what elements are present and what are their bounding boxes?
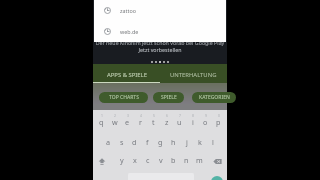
staticText: o (203, 117, 208, 127)
button[interactable]: j (180, 133, 193, 149)
button[interactable]: 5 (147, 113, 160, 129)
staticText: 3 (127, 113, 129, 118)
button[interactable]: SPIELE (153, 92, 184, 103)
button[interactable]: Shift (96, 155, 108, 167)
staticText: y (120, 155, 124, 165)
staticText: h (171, 137, 176, 147)
button[interactable]: n (180, 151, 193, 167)
staticText: e (125, 117, 130, 127)
staticText: b (171, 155, 176, 165)
staticText: t (152, 117, 155, 127)
staticText: q (99, 117, 104, 127)
button[interactable]: 7 (173, 113, 186, 129)
other: Recent search (104, 28, 111, 35)
button[interactable]: Der neue Kinofilm jetzt schon vorab bei … (93, 0, 227, 64)
staticText: 5 (153, 113, 155, 118)
staticText: k (198, 137, 202, 147)
staticText: r (139, 117, 142, 127)
button[interactable]: s (115, 133, 128, 149)
button[interactable]: UNTERHALTUNG (160, 64, 227, 83)
button[interactable]: a (102, 133, 115, 149)
staticText: web.de (120, 28, 139, 35)
staticText: zattoo (120, 7, 136, 14)
staticText: 0 (218, 113, 220, 118)
button[interactable]: 4 (134, 113, 147, 129)
staticText: APPS & SPIELE (107, 71, 147, 79)
staticText: f (146, 137, 149, 147)
staticText: SPIELE (161, 94, 177, 101)
staticText: s (120, 137, 124, 147)
button[interactable]: h (167, 133, 180, 149)
staticText: x (133, 155, 137, 165)
staticText: 7 (179, 113, 181, 118)
button[interactable]: 1 (95, 113, 108, 129)
button[interactable]: c (141, 151, 154, 167)
button[interactable]: Recent search (94, 21, 226, 42)
button[interactable]: m (193, 151, 206, 167)
button[interactable]: f (141, 133, 154, 149)
staticText: 6 (166, 113, 168, 118)
staticText: z (165, 117, 169, 127)
staticText: KATEGORIEN (199, 94, 230, 101)
staticText: 8 (192, 113, 194, 118)
staticText: g (158, 137, 163, 147)
staticText: c (146, 155, 150, 165)
button[interactable]: b (167, 151, 180, 167)
staticText: 1 (101, 113, 103, 118)
staticText: 2 (114, 113, 116, 118)
button[interactable]: 8 (186, 113, 199, 129)
button[interactable]: TOP CHARTS (99, 92, 148, 103)
button[interactable]: 0 (212, 113, 225, 129)
staticText: 4 (140, 113, 142, 118)
staticText: l (212, 137, 214, 147)
staticText: d (132, 137, 137, 147)
button[interactable]: KATEGORIEN (192, 92, 236, 103)
staticText: Der neue Kinofilm jetzt schon vorab bei … (93, 39, 227, 46)
staticText: n (184, 155, 189, 165)
staticText: i (192, 117, 194, 127)
button[interactable]: l (206, 133, 219, 149)
staticText: Jetzt vorbestellen (93, 46, 227, 53)
button[interactable]: x (128, 151, 141, 167)
staticText: p (216, 117, 221, 127)
staticText: u (177, 117, 182, 127)
button[interactable]: d (128, 133, 141, 149)
button[interactable]: y (115, 151, 128, 167)
button[interactable]: k (193, 133, 206, 149)
staticText: w (112, 117, 118, 127)
button[interactable]: g (154, 133, 167, 149)
staticText: v (159, 155, 163, 165)
other: Recent search (104, 7, 111, 14)
staticText: j (186, 137, 188, 147)
button[interactable]: Recent search (94, 0, 226, 21)
staticText: m (196, 155, 203, 165)
staticText: a (106, 137, 111, 147)
button[interactable]: Search (211, 176, 223, 180)
button[interactable]: 6 (160, 113, 173, 129)
button[interactable]: v (154, 151, 167, 167)
staticText: TOP CHARTS (109, 94, 139, 101)
button[interactable]: Backspace (211, 155, 223, 167)
button[interactable]: 2 (108, 113, 121, 129)
staticText: 9 (205, 113, 207, 118)
button[interactable]: APPS & SPIELE (93, 64, 160, 83)
button[interactable]: 3 (121, 113, 134, 129)
staticText: UNTERHALTUNG (170, 71, 217, 79)
button[interactable]: 9 (199, 113, 212, 129)
